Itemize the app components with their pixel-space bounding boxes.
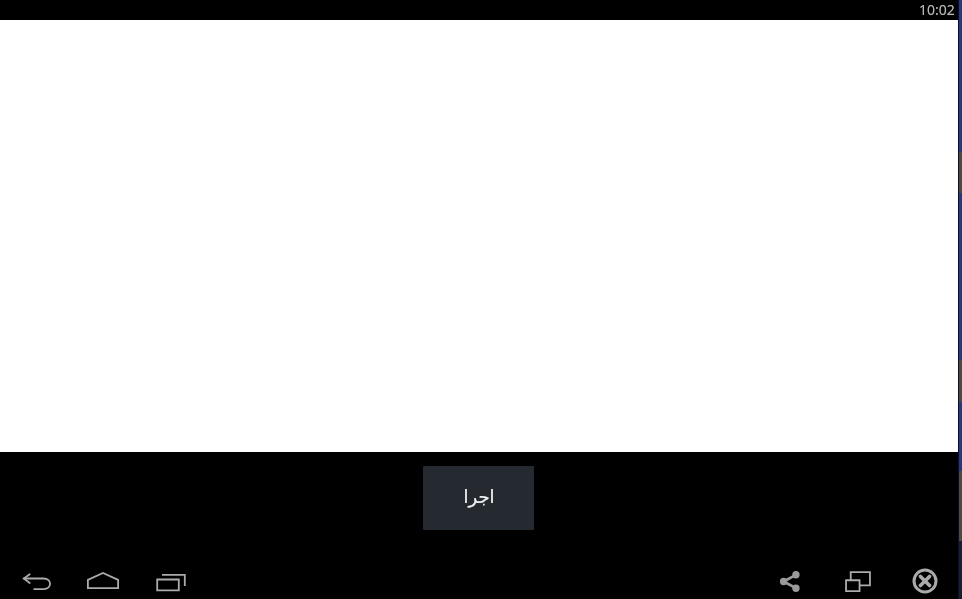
- button[interactable]: Close: [903, 559, 947, 599]
- button[interactable]: اجرا: [423, 466, 534, 530]
- button[interactable]: Multi window: [836, 559, 880, 599]
- staticText: 10:02: [919, 0, 955, 19]
- button[interactable]: Back: [15, 560, 59, 599]
- button[interactable]: Share: [768, 559, 812, 599]
- button[interactable]: Home: [81, 558, 125, 599]
- staticText: اجرا: [463, 486, 495, 507]
- button[interactable]: Recent apps: [149, 560, 193, 599]
